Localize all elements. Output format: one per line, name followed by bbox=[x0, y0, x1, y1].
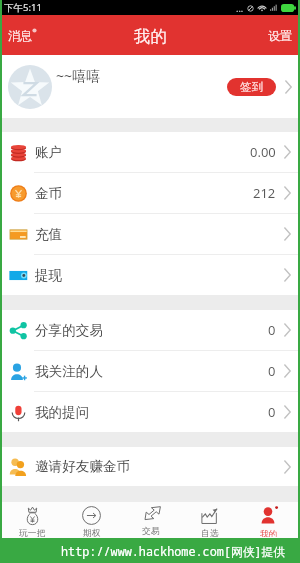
staticText: 0.00 bbox=[250, 143, 276, 161]
staticText: 我关注的人 bbox=[35, 363, 103, 380]
staticText: 设置 bbox=[268, 28, 292, 43]
button[interactable]: 期权 bbox=[62, 502, 121, 538]
button[interactable]: 我关注的人 bbox=[2, 351, 298, 391]
button[interactable]: 我的提问 bbox=[2, 392, 298, 432]
staticText: 交易 bbox=[142, 526, 160, 537]
button[interactable]: 消息 bbox=[2, 19, 43, 52]
button[interactable]: 自选 bbox=[180, 502, 239, 538]
staticText: 期权 bbox=[83, 528, 101, 537]
staticText: 签到 bbox=[240, 80, 263, 94]
staticText: 分享的交易 bbox=[35, 322, 103, 339]
staticText: 玩一把 bbox=[19, 528, 46, 537]
staticText: ... bbox=[236, 2, 244, 14]
staticText: 我的 bbox=[260, 529, 278, 537]
button[interactable]: 设置 bbox=[262, 19, 298, 52]
staticText: 0 bbox=[268, 403, 276, 421]
button[interactable]: ~~嘻嘻 bbox=[2, 55, 298, 118]
staticText: ~~嘻嘻 bbox=[56, 66, 101, 85]
staticText: 金币 bbox=[35, 185, 63, 202]
button[interactable]: 账户 bbox=[2, 132, 298, 172]
button[interactable]: 充值 bbox=[2, 214, 298, 254]
staticText: 0 bbox=[268, 321, 276, 339]
button[interactable]: 玩一把 bbox=[2, 502, 62, 538]
button[interactable]: 金币 bbox=[2, 173, 298, 213]
button[interactable]: 交易 bbox=[121, 502, 180, 538]
button[interactable]: 提现 bbox=[2, 255, 298, 295]
staticText: http://www.hackhome.com[网侠]提供 bbox=[61, 543, 286, 559]
staticText: 充值 bbox=[35, 226, 63, 243]
staticText: 自选 bbox=[201, 528, 219, 537]
button[interactable]: 我的 bbox=[239, 502, 298, 538]
staticText: 消息 bbox=[8, 28, 32, 43]
button[interactable]: 签到 bbox=[227, 78, 276, 96]
staticText: 邀请好友赚金币 bbox=[35, 458, 131, 475]
button[interactable]: 分享的交易 bbox=[2, 310, 298, 350]
staticText: 账户 bbox=[35, 144, 63, 161]
staticText: 下午5:11 bbox=[4, 1, 42, 14]
staticText: 0 bbox=[268, 362, 276, 380]
staticText: 我的提问 bbox=[35, 404, 90, 421]
staticText: 提现 bbox=[35, 267, 63, 284]
staticText: 我的 bbox=[134, 26, 167, 47]
staticText: 212 bbox=[253, 184, 276, 202]
button[interactable]: 邀请好友赚金币 bbox=[2, 447, 298, 486]
